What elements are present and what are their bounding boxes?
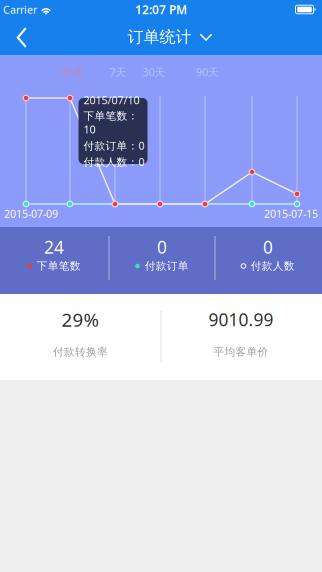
button[interactable]: 0: [0, 227, 322, 294]
staticText: 付款人数：0: [83, 155, 144, 169]
staticText: 2015-07-15: [264, 206, 318, 221]
staticText: 30天: [142, 65, 165, 79]
staticText: 24: [44, 235, 64, 258]
staticText: 下单笔数: [37, 259, 81, 272]
staticText: 今天: [61, 65, 83, 78]
staticText: 订单统计: [127, 27, 191, 47]
button[interactable]: 0: [0, 227, 322, 294]
staticText: 12:07 PM: [135, 1, 187, 17]
button[interactable]: 30天: [133, 64, 175, 80]
staticText: 2015/07/10: [83, 93, 139, 107]
staticText: 2015-07-09: [4, 206, 58, 221]
staticText: 平均客单价: [213, 345, 268, 358]
staticText: 付款订单: [145, 259, 189, 272]
staticText: 9010.99: [208, 308, 273, 331]
staticText: 0: [263, 235, 273, 258]
staticText: 付款人数: [251, 259, 295, 272]
staticText: Carrier: [3, 2, 37, 17]
staticText: 下单笔数：10: [83, 109, 138, 137]
staticText: 90天: [196, 65, 219, 79]
button[interactable]: 7天: [97, 64, 139, 80]
staticText: 0: [157, 235, 167, 258]
staticText: 29%: [61, 307, 99, 332]
staticText: 付款订单：0: [83, 139, 144, 153]
staticText: 付款转换率: [53, 345, 108, 358]
button[interactable]: Back: [0, 20, 44, 55]
button[interactable]: 24: [0, 227, 322, 294]
button[interactable]: 9010.99: [0, 294, 322, 380]
button[interactable]: 订单统计: [121, 21, 218, 53]
button[interactable]: 今天: [51, 64, 93, 80]
button[interactable]: 29%: [0, 294, 322, 380]
button[interactable]: 90天: [186, 64, 228, 80]
staticText: 7天: [109, 65, 126, 79]
